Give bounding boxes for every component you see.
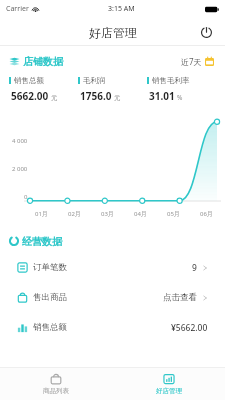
staticText: 经营数据 <box>22 235 62 248</box>
staticText: 3:15 AM <box>108 4 135 14</box>
staticText: 01月 <box>35 210 48 218</box>
staticText: 销售毛利率 <box>152 76 190 85</box>
staticText: 销售总额 <box>14 76 44 85</box>
staticText: 4 000 <box>12 137 28 145</box>
button[interactable]: 销售总额 <box>9 315 216 340</box>
staticText: 元 <box>114 94 121 102</box>
staticText: 订单笔数 <box>33 262 67 273</box>
staticText: 9 <box>192 262 197 274</box>
button[interactable]: Power <box>195 21 217 43</box>
staticText: 好店管理 <box>156 387 182 395</box>
staticText: 商品列表 <box>43 387 69 395</box>
button[interactable]: 好店管理 <box>112 368 225 400</box>
staticText: 31.01 <box>149 89 175 103</box>
staticText: 1756.0 <box>80 89 112 103</box>
staticText: 售出商品 <box>33 292 67 303</box>
staticText: 店铺数据 <box>23 55 63 68</box>
staticText: 06月 <box>200 210 213 218</box>
button[interactable]: 商品列表 <box>0 368 112 400</box>
staticText: 0 <box>24 193 28 201</box>
staticText: 销售总额 <box>33 322 67 333</box>
staticText: % <box>177 93 183 102</box>
staticText: 05月 <box>167 210 180 218</box>
staticText: 好店管理 <box>89 25 137 40</box>
staticText: 03月 <box>101 210 114 218</box>
staticText: Carrier <box>6 4 29 14</box>
staticText: 04月 <box>134 210 147 218</box>
staticText: 元 <box>51 94 58 102</box>
staticText: 2 000 <box>12 165 28 173</box>
staticText: 毛利润 <box>83 76 106 85</box>
staticText: 点击查看 <box>163 292 197 303</box>
staticText: 5662.00 <box>11 89 49 103</box>
button[interactable]: 订单笔数 <box>9 255 216 280</box>
staticText: ¥5662.00 <box>171 322 208 334</box>
button[interactable]: 近7天 <box>179 56 216 67</box>
button[interactable]: 售出商品 <box>9 285 216 310</box>
staticText: 近7天 <box>181 56 202 67</box>
staticText: 02月 <box>68 210 81 218</box>
